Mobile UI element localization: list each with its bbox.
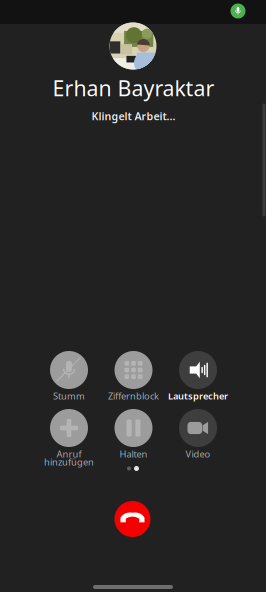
staticText: Stumm [53,390,85,402]
button[interactable]: Stumm [50,351,88,389]
button[interactable]: Ziffernblock [114,351,152,389]
button[interactable]: Lautsprecher [179,351,217,389]
staticText: Ziffernblock [108,390,159,402]
button[interactable]: Video [179,409,217,447]
staticText: Video [185,448,210,460]
button[interactable]: Mikrofon aktiv [230,3,245,18]
staticText: Klingelt Arbeit... [91,109,175,123]
staticText: Lautsprecher [168,390,228,402]
staticText: Halten [119,448,147,460]
staticText: Erhan Bayraktar [52,74,214,102]
staticText: hinzufügen [44,456,94,468]
button[interactable]: Auflegen [114,501,150,537]
staticText: Anruf [56,448,81,460]
button[interactable]: Anruf hinzufügen [50,409,88,447]
button[interactable]: Halten [114,409,152,447]
